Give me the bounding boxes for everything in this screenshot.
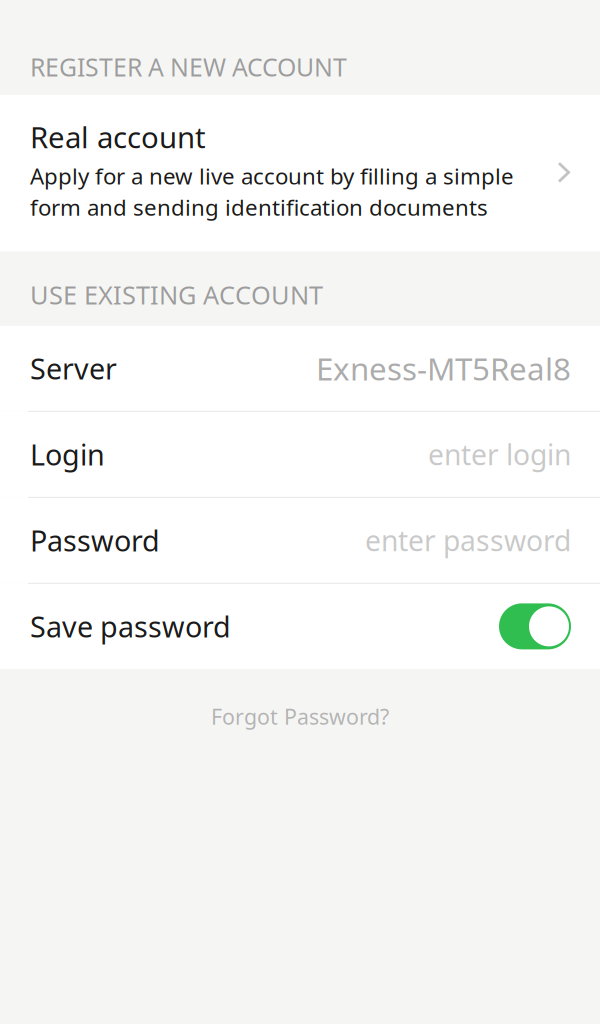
staticText: Login bbox=[30, 435, 105, 474]
button[interactable]: Login bbox=[0, 412, 600, 497]
staticText: enter login bbox=[428, 435, 571, 474]
button[interactable]: Forgot Password? bbox=[0, 669, 600, 755]
button[interactable]: Save password bbox=[0, 584, 600, 669]
staticText: REGISTER A NEW ACCOUNT bbox=[30, 50, 347, 84]
staticText: Server bbox=[30, 349, 117, 388]
staticText: Password bbox=[30, 521, 160, 560]
button[interactable]: Server bbox=[0, 326, 600, 411]
staticText: USE EXISTING ACCOUNT bbox=[30, 277, 323, 312]
staticText: Forgot Password? bbox=[211, 702, 389, 731]
staticText: form and sending identification document… bbox=[30, 192, 488, 222]
staticText: Real account bbox=[30, 117, 206, 157]
staticText: Apply for a new live account by filling … bbox=[30, 161, 514, 191]
staticText: Exness-MT5Real8 bbox=[316, 347, 571, 390]
staticText: enter password bbox=[365, 521, 571, 560]
button[interactable]: Real account bbox=[0, 95, 600, 251]
staticText: Save password bbox=[30, 607, 231, 646]
button[interactable]: Password bbox=[0, 498, 600, 583]
